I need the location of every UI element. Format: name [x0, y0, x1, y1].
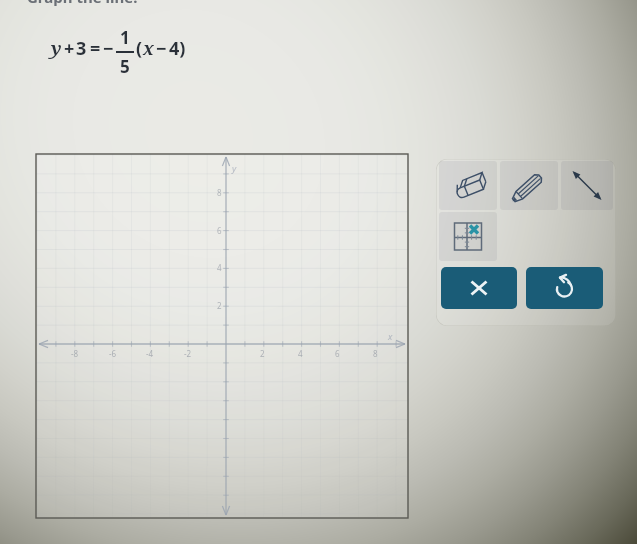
staticText: 4 [217, 262, 222, 273]
staticText: 2 [217, 300, 222, 311]
button[interactable]: Plot point [439, 212, 497, 261]
staticText: 6 [335, 348, 340, 359]
button[interactable]: Eraser [439, 161, 497, 210]
button[interactable]: Line [561, 161, 613, 210]
staticText: Graph the line. [27, 0, 138, 7]
staticText: -4 [146, 348, 154, 359]
staticText: y [51, 36, 62, 61]
staticText: y [232, 162, 237, 174]
staticText: 8 [373, 348, 378, 359]
staticText: -8 [71, 348, 79, 359]
staticText: 4 [298, 348, 303, 359]
button[interactable]: Undo [526, 267, 603, 309]
staticText: − [103, 36, 114, 61]
button[interactable]: -8 [36, 154, 408, 518]
button[interactable]: Pencil [500, 161, 558, 210]
staticText: = [90, 36, 101, 61]
staticText: ( [136, 36, 143, 61]
staticText: 2 [260, 348, 265, 359]
staticText: 1 [120, 26, 130, 49]
staticText: 8 [217, 187, 222, 198]
staticText: x [143, 36, 154, 61]
staticText: -6 [109, 348, 117, 359]
staticText: x [388, 330, 393, 342]
staticText: 6 [217, 225, 222, 236]
staticText: -2 [184, 348, 192, 359]
staticText: − [156, 36, 167, 61]
button[interactable]: Clear [441, 267, 517, 309]
staticText: + [64, 36, 75, 61]
staticText: 3 [76, 36, 87, 61]
staticText: 5 [120, 55, 130, 78]
staticText: 4) [169, 36, 186, 61]
